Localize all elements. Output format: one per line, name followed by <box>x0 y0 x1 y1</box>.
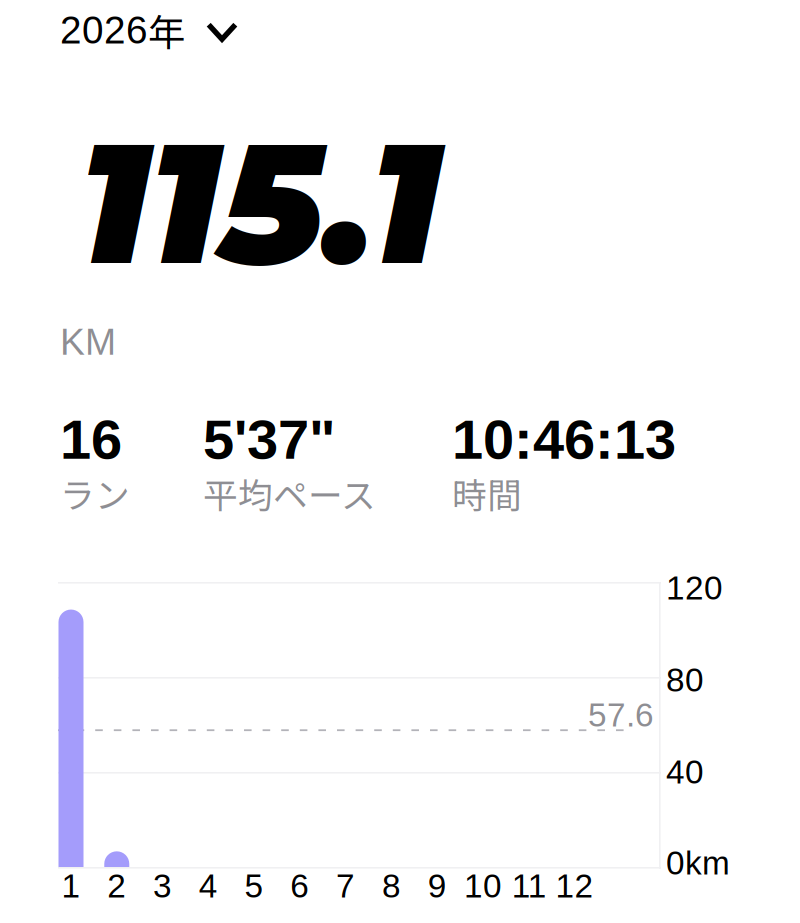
staticText: 3 <box>153 867 172 905</box>
staticText: 10 <box>464 867 502 905</box>
staticText: 40 <box>666 753 704 791</box>
staticText: 12 <box>555 867 593 905</box>
staticText: 0km <box>666 844 730 882</box>
staticText: 57.6 <box>588 696 654 734</box>
staticText: 6 <box>290 867 309 905</box>
staticText: 1 <box>61 867 80 905</box>
staticText: 10:46:13 <box>452 408 676 471</box>
staticText: 8 <box>382 867 401 905</box>
staticText: 4 <box>199 867 218 905</box>
staticText: 80 <box>666 661 704 699</box>
staticText: 16 <box>60 408 122 471</box>
staticText: 7 <box>336 867 355 905</box>
button[interactable]: 2026 <box>60 3 217 57</box>
staticText: 時間 <box>452 468 522 518</box>
staticText: 120 <box>666 569 723 607</box>
staticText: 2 <box>107 867 126 905</box>
staticText: 115.1 <box>79 99 441 305</box>
staticText: 平均ペース <box>203 468 376 518</box>
staticText: 11 <box>512 867 546 905</box>
staticText: 年 <box>148 3 185 57</box>
staticText: KM <box>60 321 116 363</box>
staticText: ラン <box>60 468 130 518</box>
staticText: 9 <box>428 867 447 905</box>
staticText: 2026 <box>60 8 148 52</box>
staticText: 5'37" <box>203 408 336 471</box>
staticText: 5 <box>245 867 264 905</box>
